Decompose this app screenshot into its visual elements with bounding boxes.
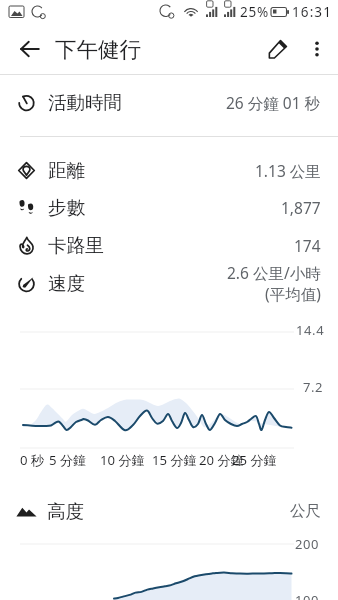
staticText: 速度 bbox=[48, 272, 85, 295]
staticText: 174 bbox=[294, 235, 321, 256]
staticText: 卡路里 bbox=[48, 234, 104, 257]
staticText: 下午健行 bbox=[55, 36, 141, 63]
staticText: 25% bbox=[240, 3, 270, 21]
staticText: 25 分鐘 bbox=[232, 451, 277, 469]
staticText: 距離 bbox=[48, 159, 85, 182]
staticText: 200 bbox=[295, 535, 320, 553]
staticText: 1,877 bbox=[281, 197, 321, 218]
staticText: 26 分鐘 01 秒 bbox=[226, 92, 321, 113]
staticText: 10 分鐘 bbox=[100, 451, 145, 469]
button[interactable]: 卡路里 bbox=[0, 227, 338, 263]
staticText: 活動時間 bbox=[48, 91, 122, 114]
button[interactable]: 步數 bbox=[0, 189, 338, 225]
staticText: 16:31 bbox=[292, 3, 333, 21]
staticText: 步數 bbox=[48, 196, 85, 219]
staticText: 高度 bbox=[47, 500, 84, 523]
staticText: 7.2 bbox=[303, 378, 324, 396]
staticText: 2.6 公里/小時 bbox=[227, 262, 321, 283]
button[interactable]: 高度 bbox=[0, 492, 338, 530]
staticText: 1.13 公里 bbox=[255, 160, 321, 181]
button[interactable]: Edit bbox=[256, 24, 300, 74]
staticText: 0 秒 bbox=[20, 451, 45, 469]
button[interactable]: 速度 bbox=[0, 262, 338, 304]
button[interactable]: More options bbox=[298, 24, 336, 74]
staticText: 5 分鐘 bbox=[49, 451, 87, 469]
staticText: 20 分鐘 bbox=[199, 451, 244, 469]
staticText: 15 分鐘 bbox=[152, 451, 197, 469]
staticText: 100 bbox=[295, 591, 320, 600]
staticText: 14.4 bbox=[296, 321, 325, 339]
button[interactable]: 距離 bbox=[0, 152, 338, 188]
button[interactable]: 活動時間 bbox=[0, 84, 338, 120]
staticText: (平均值) bbox=[265, 283, 321, 304]
staticText: 公尺 bbox=[290, 501, 321, 521]
button[interactable]: Back bbox=[8, 24, 52, 74]
